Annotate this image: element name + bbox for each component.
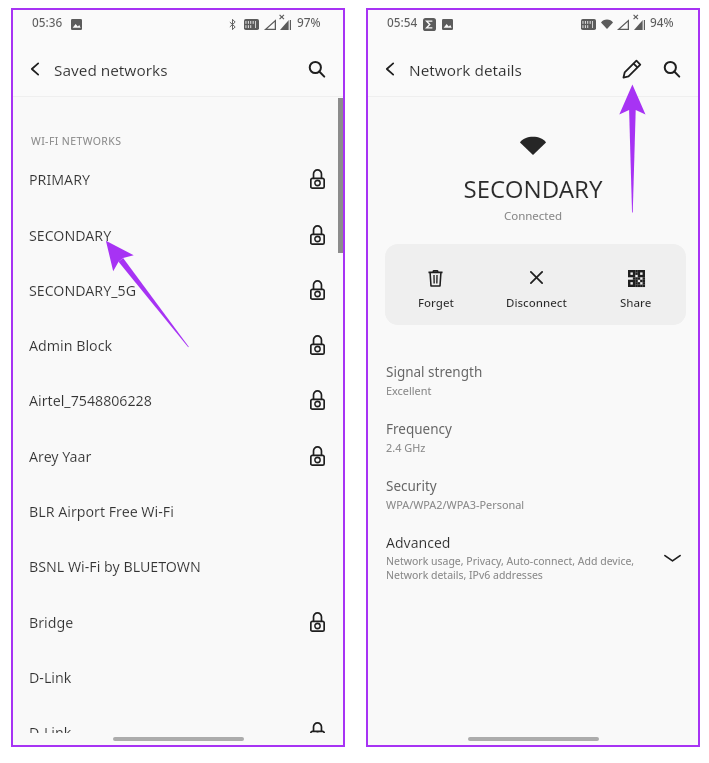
staticText: Share xyxy=(620,295,652,311)
button[interactable]: Bridge xyxy=(13,604,343,640)
button[interactable]: SECONDARY xyxy=(13,217,343,253)
staticText: SECONDARY_5G xyxy=(29,281,136,300)
staticText: Connected xyxy=(368,208,698,224)
button[interactable]: Admin Block xyxy=(13,327,343,363)
staticText: Security xyxy=(386,477,437,495)
button[interactable]: Disconnect xyxy=(486,244,586,325)
staticText: Admin Block xyxy=(29,336,113,355)
button[interactable]: Arey Yaar xyxy=(13,438,343,474)
staticText: WPA/WPA2/WPA3-Personal xyxy=(386,497,525,512)
button[interactable]: Frequency xyxy=(368,420,698,455)
button[interactable]: Share xyxy=(586,244,686,325)
staticText: Frequency xyxy=(386,420,452,438)
button[interactable]: Security xyxy=(368,477,698,512)
staticText: Airtel_7548806228 xyxy=(29,391,152,410)
staticText: Network usage, Privacy, Auto-connect, Ad… xyxy=(386,554,635,582)
button[interactable]: Forget xyxy=(385,244,486,325)
button[interactable]: Back xyxy=(23,57,47,81)
button[interactable]: Edit xyxy=(620,57,644,81)
staticText: 97% xyxy=(297,14,321,30)
staticText: BLR Airport Free Wi-Fi xyxy=(29,502,174,521)
button[interactable]: Advanced xyxy=(368,533,698,582)
staticText: Excellent xyxy=(386,383,432,398)
staticText: Bridge xyxy=(29,613,74,632)
staticText: Disconnect xyxy=(506,295,567,311)
button[interactable]: D-Link xyxy=(13,714,343,733)
staticText: 2.4 GHz xyxy=(386,440,426,455)
staticText: 05:36 xyxy=(32,14,63,30)
staticText: Arey Yaar xyxy=(29,447,92,466)
button[interactable]: PRIMARY xyxy=(13,161,343,197)
staticText: SECONDARY xyxy=(368,172,698,205)
button[interactable]: SECONDARY_5G xyxy=(13,272,343,308)
staticText: D-Link xyxy=(29,723,72,733)
staticText: PRIMARY xyxy=(29,170,91,189)
staticText: Forget xyxy=(418,295,454,311)
button[interactable]: Back xyxy=(378,57,402,81)
staticText: Saved networks xyxy=(54,60,168,81)
button[interactable]: BSNL Wi-Fi by BLUETOWN xyxy=(13,548,343,584)
button[interactable]: Airtel_7548806228 xyxy=(13,382,343,418)
button[interactable]: Search xyxy=(659,56,683,80)
staticText: BSNL Wi-Fi by BLUETOWN xyxy=(29,557,201,576)
staticText: D-Link xyxy=(29,668,72,687)
staticText: Advanced xyxy=(386,533,451,552)
staticText: 94% xyxy=(650,14,674,30)
button[interactable]: Signal strength xyxy=(368,363,698,398)
staticText: Signal strength xyxy=(386,363,483,381)
button[interactable]: Search xyxy=(304,56,328,80)
staticText: WI-FI NETWORKS xyxy=(31,134,122,148)
staticText: Network details xyxy=(409,60,522,81)
staticText: 05:54 xyxy=(387,14,418,30)
staticText: SECONDARY xyxy=(29,226,112,245)
button[interactable]: D-Link xyxy=(13,659,343,695)
button[interactable]: BLR Airport Free Wi-Fi xyxy=(13,493,343,529)
